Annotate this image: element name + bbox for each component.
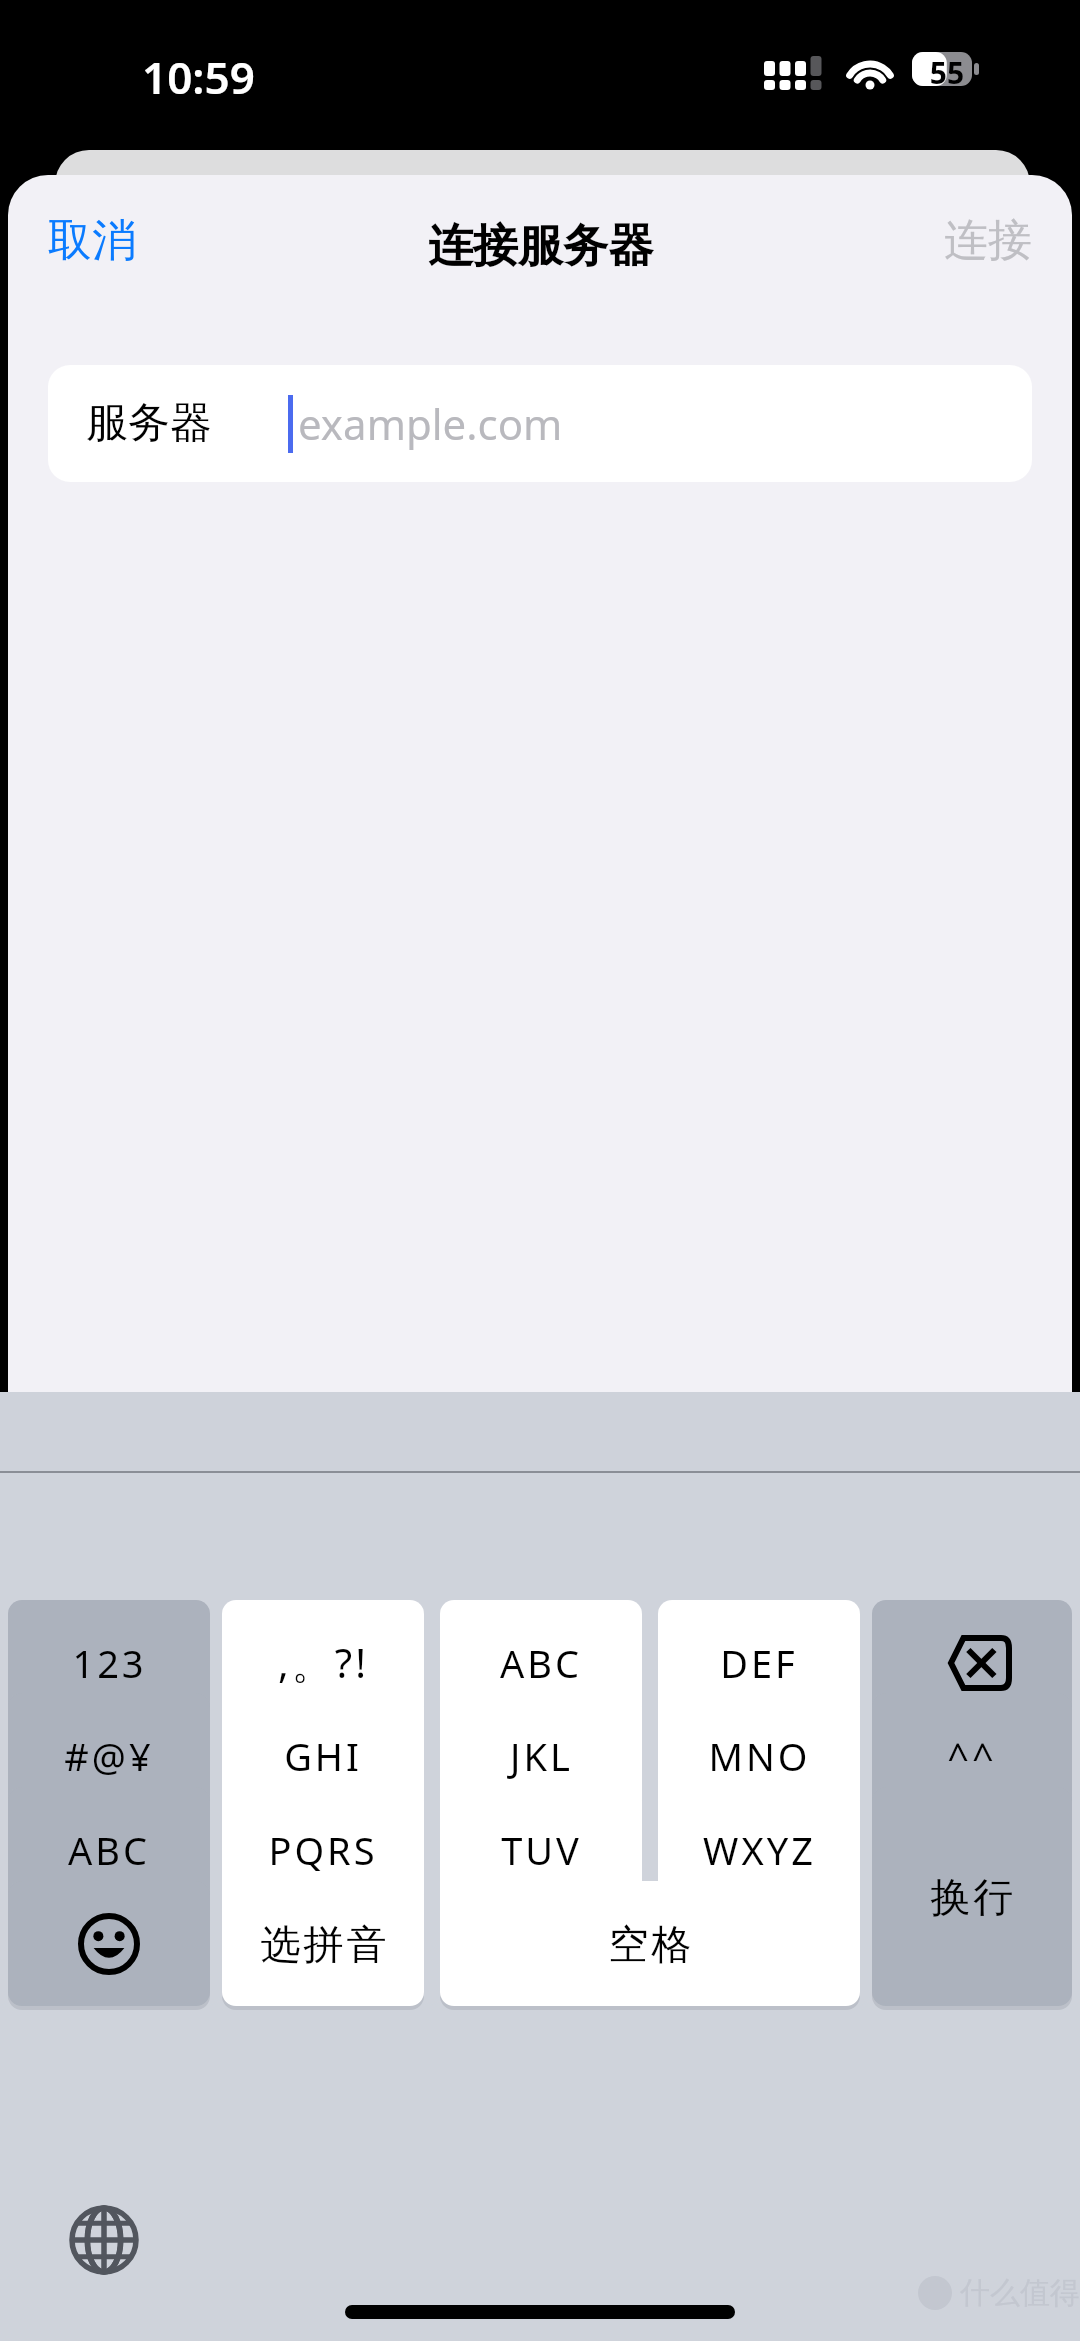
button[interactable]: PQRS <box>222 1787 424 1912</box>
button[interactable]: 取消 <box>28 199 156 282</box>
staticText: 55 <box>921 52 973 93</box>
button[interactable]: ,。?! <box>222 1600 424 1725</box>
button[interactable]: Emoji <box>8 1881 210 2006</box>
staticText: GHI <box>284 1730 362 1782</box>
button[interactable]: 123 <box>8 1600 210 1725</box>
staticText: 连接 <box>944 213 1032 268</box>
button[interactable]: Delete <box>872 1600 1072 1725</box>
staticText: 连接服务器 <box>428 218 653 275</box>
staticText: 空格 <box>607 1919 693 1969</box>
staticText: 换行 <box>929 1872 1015 1922</box>
staticText: 取消 <box>48 213 136 268</box>
button[interactable]: ^^ <box>872 1693 1072 1818</box>
button[interactable]: 连接 <box>924 199 1052 282</box>
staticText: JKL <box>510 1730 573 1782</box>
staticText: PQRS <box>268 1824 378 1876</box>
staticText: 10:59 <box>142 47 255 107</box>
staticText: 服务器 <box>86 397 212 450</box>
staticText: #@¥ <box>64 1730 154 1782</box>
staticText: TUV <box>501 1824 582 1876</box>
button[interactable]: JKL <box>440 1693 642 1818</box>
button[interactable]: #@¥ <box>8 1693 210 1818</box>
button[interactable]: DEF <box>658 1600 860 1725</box>
staticText: DEF <box>720 1637 798 1689</box>
button[interactable]: TUV <box>440 1787 642 1912</box>
button[interactable]: 换行 <box>872 1787 1072 2006</box>
button[interactable]: 选拼音 <box>222 1881 424 2006</box>
button[interactable]: Switch keyboard language <box>52 2188 156 2292</box>
staticText: example.com <box>298 395 563 452</box>
button[interactable]: MNO <box>658 1693 860 1818</box>
staticText: 123 <box>72 1637 147 1689</box>
staticText: 什么值得买 <box>960 2274 1080 2312</box>
staticText: 选拼音 <box>259 1919 388 1969</box>
staticText: WXYZ <box>703 1824 816 1876</box>
staticText: ABC <box>68 1824 150 1876</box>
button[interactable]: 空格 <box>440 1881 860 2006</box>
staticText: ABC <box>500 1637 582 1689</box>
staticText: ,。?! <box>278 1635 369 1690</box>
button[interactable]: 服务器 <box>48 365 1032 482</box>
button[interactable]: WXYZ <box>658 1787 860 1912</box>
staticText: MNO <box>708 1730 811 1782</box>
button[interactable]: ABC <box>8 1787 210 1912</box>
button[interactable]: GHI <box>222 1693 424 1818</box>
button[interactable]: ABC <box>440 1600 642 1725</box>
staticText: ^^ <box>947 1730 997 1782</box>
